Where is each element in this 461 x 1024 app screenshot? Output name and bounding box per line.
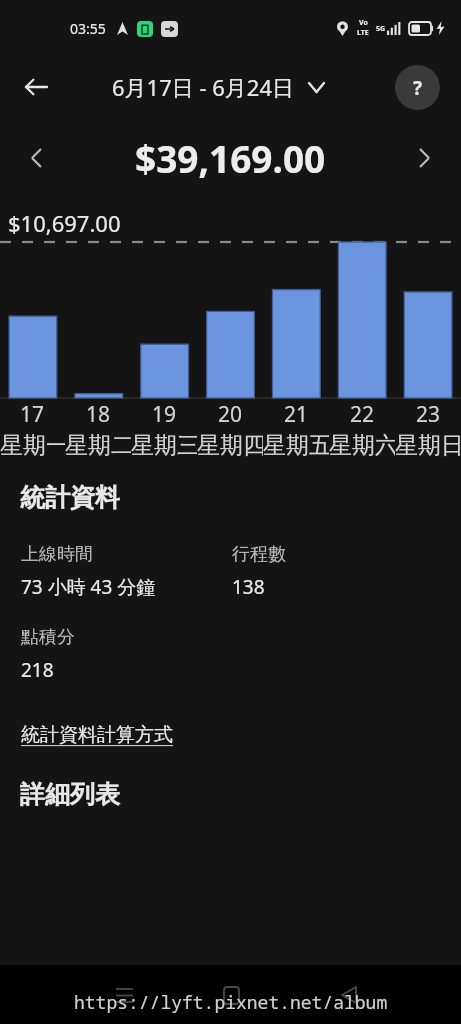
staticText: Vo [359,18,368,28]
button[interactable]: Next week [405,138,445,178]
staticText: 星期五 [263,431,329,460]
staticText: 73 小時 43 分鐘 [21,574,156,600]
staticText: 03:55 [70,19,106,38]
staticText: 18 [86,400,111,429]
staticText: 22 [350,400,375,429]
staticText: 上線時間 [21,543,93,566]
staticText: 點積分 [21,626,75,649]
staticText: 21 [284,400,309,429]
staticText: 詳細列表 [20,779,120,810]
staticText: $39,169.00 [135,133,326,183]
staticText: 星期二 [65,431,131,460]
staticText: 星期六 [329,431,395,460]
staticText: 星期三 [131,431,197,460]
staticText: 5G [376,24,386,34]
staticText: 23 [416,400,441,429]
staticText: 統計資料 [20,482,120,513]
staticText: 20 [218,400,243,429]
staticText: 6月17日 - 6月24日 [112,72,295,102]
staticText: ? [413,75,423,101]
button[interactable]: Previous week [16,138,56,178]
staticText: 17 [20,400,45,429]
button[interactable]: Back [14,65,58,109]
staticText: 星期日 [395,431,461,460]
staticText: 19 [152,400,177,429]
staticText: 218 [21,657,54,683]
staticText: $10,697.00 [8,208,121,238]
staticText: LTE [357,28,369,38]
staticText: 星期一 [0,431,65,460]
button[interactable]: 統計資料計算方式 [21,723,173,747]
staticText: 統計資料計算方式 [21,723,173,747]
button[interactable]: Back [329,975,369,1015]
staticText: https://lyft.pixnet.net/album [74,990,388,1015]
button[interactable]: Recents [104,975,144,1015]
button[interactable]: Help [395,65,440,110]
staticText: 星期四 [197,431,263,460]
staticText: 行程數 [232,543,286,566]
button[interactable]: Home [211,975,251,1015]
staticText: 138 [232,574,265,600]
button[interactable]: 6月17日 - 6月24日 [112,72,324,102]
